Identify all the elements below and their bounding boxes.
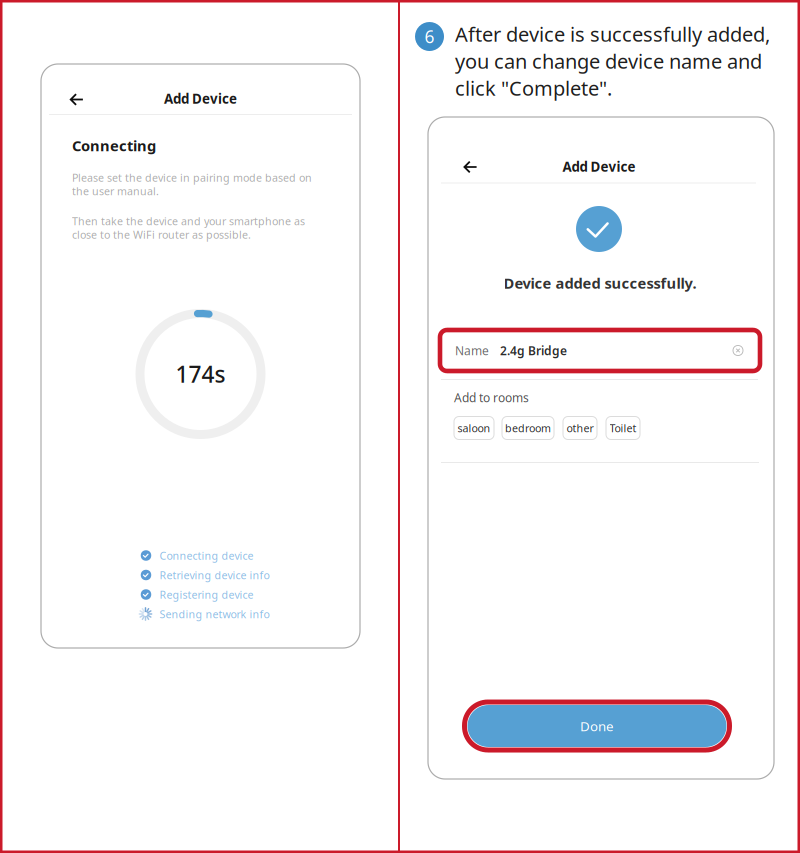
staticText: Please set the device in pairing mode ba…	[72, 170, 312, 185]
staticText: saloon	[457, 421, 490, 435]
staticText: Add Device	[562, 158, 635, 175]
staticText: other	[566, 421, 593, 435]
staticText: Then take the device and your smartphone…	[72, 214, 305, 228]
staticText: Connecting device	[159, 548, 253, 563]
staticText: Device added successfully.	[503, 273, 696, 293]
staticText: 2.4g Bridge	[500, 342, 567, 358]
staticText: Toilet	[609, 421, 636, 435]
staticText: 174s	[175, 359, 225, 389]
staticText: bedroom	[505, 421, 551, 435]
staticText: you can change device name and	[455, 48, 762, 74]
staticText: Add to rooms	[454, 389, 529, 405]
staticText: Sending network info	[159, 607, 269, 621]
button[interactable]: other	[563, 416, 597, 439]
staticText: Add Device	[164, 90, 237, 107]
button[interactable]: Done	[462, 700, 732, 752]
button[interactable]: bedroom	[502, 416, 554, 439]
staticText: Connecting	[72, 136, 156, 155]
staticText: Name	[455, 342, 489, 358]
staticText: Done	[580, 717, 614, 735]
button[interactable]: Back	[455, 153, 485, 181]
staticText: close to the WiFi router as possible.	[72, 227, 251, 242]
staticText: After device is successfully added,	[455, 21, 770, 47]
staticText: 6	[424, 25, 434, 48]
staticText: the user manual.	[72, 184, 159, 198]
button[interactable]: Toilet	[606, 416, 640, 439]
button[interactable]: Back	[62, 85, 92, 113]
staticText: Registering device	[159, 587, 253, 602]
staticText: Retrieving device info	[159, 568, 269, 582]
staticText: click "Complete".	[455, 75, 612, 101]
button[interactable]: saloon	[454, 416, 494, 439]
